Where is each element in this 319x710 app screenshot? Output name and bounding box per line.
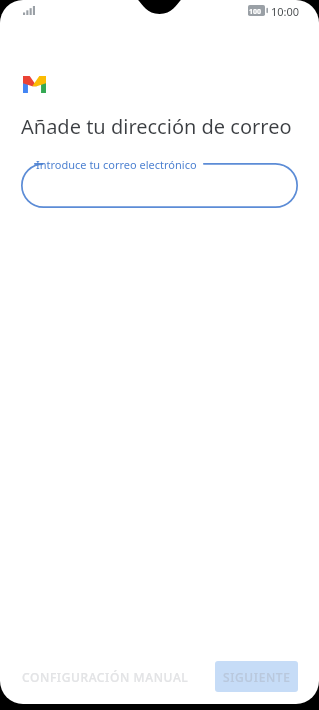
button[interactable]: SIGUIENTE bbox=[215, 661, 298, 692]
staticText: 100 bbox=[249, 7, 262, 17]
staticText: Añade tu dirección de correo bbox=[21, 113, 292, 140]
staticText: SIGUIENTE bbox=[223, 669, 291, 685]
staticText: CONFIGURACIÓN MANUAL bbox=[22, 669, 189, 685]
button[interactable]: CONFIGURACIÓN MANUAL bbox=[13, 661, 198, 692]
staticText: 10:00 bbox=[271, 4, 300, 19]
staticText: Introduce tu correo electrónico bbox=[36, 157, 197, 172]
button[interactable]: Introduce tu correo electrónico bbox=[21, 163, 298, 208]
